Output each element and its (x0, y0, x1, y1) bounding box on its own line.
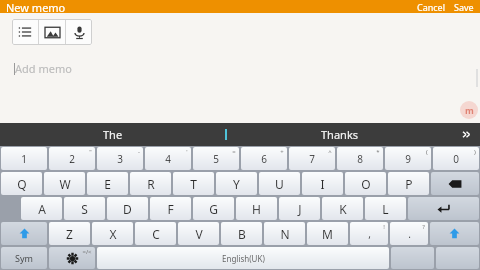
button[interactable]: Q (1, 172, 42, 195)
staticText: 4 (165, 152, 171, 166)
button[interactable]: Thanks (227, 123, 452, 146)
button[interactable]: New memo (6, 0, 66, 13)
button[interactable]: L (365, 197, 406, 220)
button[interactable]: Insert image (39, 19, 65, 45)
staticText: O (361, 176, 371, 192)
button[interactable]: X (92, 222, 133, 245)
staticText: , (368, 227, 371, 241)
staticText: T (190, 176, 197, 192)
button[interactable] (436, 247, 479, 269)
button[interactable]: 2 (49, 147, 95, 170)
staticText: Q (17, 176, 27, 192)
button[interactable]: Shift (1, 222, 47, 245)
button[interactable]: Sym (1, 247, 47, 269)
button[interactable]: 1 (1, 147, 47, 170)
staticText: G (209, 201, 218, 217)
button[interactable]: Save (454, 1, 474, 13)
staticText: P (405, 176, 413, 192)
staticText: 6 (261, 152, 267, 166)
button[interactable]: 3 (97, 147, 143, 170)
button[interactable]: Backspace (431, 172, 479, 195)
staticText: W (59, 176, 71, 192)
staticText: =/< (82, 248, 92, 256)
staticText: 8 (357, 152, 363, 166)
button[interactable]: D (107, 197, 148, 220)
staticText: Sym (15, 252, 33, 264)
staticText: = (232, 148, 236, 156)
button[interactable]: Shift (430, 222, 479, 245)
button[interactable]: B (221, 222, 262, 245)
staticText: J (298, 201, 302, 217)
staticText: 3 (117, 152, 123, 166)
staticText: L (382, 201, 389, 217)
button[interactable]: F (150, 197, 191, 220)
button[interactable]: J (279, 197, 320, 220)
staticText: * (376, 148, 380, 156)
staticText: New memo (6, 0, 66, 13)
staticText: The (103, 127, 123, 142)
staticText: ! (383, 223, 385, 231)
button[interactable]: W (44, 172, 85, 195)
staticText: ( (426, 148, 428, 156)
staticText: 2 (69, 152, 75, 166)
staticText: D (123, 201, 132, 217)
staticText: F (167, 201, 174, 217)
button[interactable]: R (130, 172, 171, 195)
staticText: Save (454, 1, 474, 13)
staticText: C (152, 226, 160, 242)
staticText: N (280, 226, 290, 242)
button[interactable]: More suggestions (452, 123, 480, 146)
button[interactable]: 0 (433, 147, 479, 170)
button[interactable]: O (345, 172, 386, 195)
button[interactable]: U (259, 172, 300, 195)
staticText: R (147, 176, 155, 192)
staticText: B (238, 226, 246, 242)
button[interactable]: 6 (241, 147, 287, 170)
button[interactable]: 8 (337, 147, 383, 170)
staticText: E (104, 176, 111, 192)
button[interactable]: 9 (385, 147, 431, 170)
button[interactable] (391, 247, 434, 269)
button[interactable]: 5 (193, 147, 239, 170)
button[interactable]: M (307, 222, 348, 245)
button[interactable]: P (388, 172, 429, 195)
staticText: 9 (405, 152, 411, 166)
button[interactable]: , (350, 222, 388, 245)
button[interactable]: . (390, 222, 428, 245)
button[interactable]: T (173, 172, 214, 195)
button[interactable]: G (193, 197, 234, 220)
button[interactable]: Z (49, 222, 90, 245)
button[interactable]: Checklist (12, 19, 38, 45)
button[interactable]: H (236, 197, 277, 220)
staticText: 0 (453, 152, 459, 166)
button[interactable]: The (0, 123, 225, 146)
staticText: - (138, 148, 140, 156)
staticText: S (81, 201, 88, 217)
button[interactable]: C (135, 222, 176, 245)
staticText: I (320, 176, 325, 192)
button[interactable]: V (178, 222, 219, 245)
button[interactable]: K (322, 197, 363, 220)
staticText: U (275, 176, 284, 192)
button[interactable]: Cancel (417, 1, 454, 13)
staticText: M (322, 226, 333, 242)
button[interactable]: English(UK) (97, 247, 389, 269)
staticText: K (339, 201, 347, 217)
staticText: Thanks (321, 127, 359, 142)
button[interactable]: Y (216, 172, 257, 195)
staticText: Cancel (417, 1, 446, 13)
staticText: Z (66, 226, 73, 242)
staticText: X (109, 226, 117, 242)
staticText: + (280, 148, 284, 156)
staticText: A (38, 201, 46, 217)
button[interactable]: =/< (49, 247, 95, 269)
button[interactable]: Voice recording (66, 19, 92, 45)
button[interactable]: 4 (145, 147, 191, 170)
button[interactable]: E (87, 172, 128, 195)
button[interactable]: Enter (408, 197, 479, 220)
button[interactable]: A (21, 197, 62, 220)
button[interactable]: I (302, 172, 343, 195)
button[interactable]: N (264, 222, 305, 245)
button[interactable]: S (64, 197, 105, 220)
button[interactable]: 7 (289, 147, 335, 170)
